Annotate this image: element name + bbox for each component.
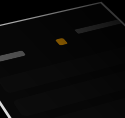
button[interactable] [0,44,125,94]
button[interactable] [74,19,122,34]
button[interactable] [0,50,26,62]
button[interactable]: Highlight [55,38,68,46]
